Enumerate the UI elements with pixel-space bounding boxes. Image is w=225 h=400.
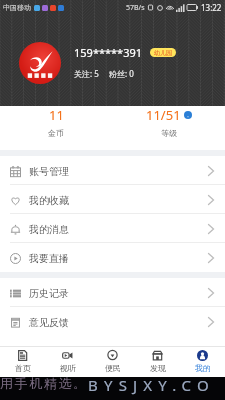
button[interactable]: 意见反馈: [0, 307, 225, 336]
staticText: 11: [49, 106, 64, 124]
button[interactable]: 我要直播: [0, 243, 225, 272]
staticText: 意见反馈: [29, 316, 69, 329]
staticText: 幼儿园: [154, 49, 172, 57]
staticText: 我的收藏: [29, 194, 69, 207]
staticText: 我的: [195, 363, 211, 373]
staticText: 11/51: [146, 106, 181, 124]
staticText: 57B/s: [126, 3, 145, 13]
staticText: 视听: [60, 363, 76, 373]
staticText: 金币: [48, 128, 64, 138]
staticText: 我的消息: [29, 223, 69, 236]
button[interactable]: 11: [0, 106, 112, 138]
button[interactable]: 账号管理: [0, 156, 225, 185]
staticText: 历史记录: [29, 287, 69, 300]
button[interactable]: 首页: [0, 346, 45, 377]
staticText: 关注: 5: [74, 68, 99, 79]
button[interactable]: 便民: [90, 346, 135, 377]
staticText: 粉丝: 0: [109, 68, 134, 79]
button[interactable]: 发现: [135, 346, 180, 377]
button[interactable]: 视听: [45, 346, 90, 377]
button[interactable]: 我的: [180, 346, 225, 377]
button[interactable]: 我的消息: [0, 214, 225, 243]
button[interactable]: 11/51: [112, 106, 225, 138]
button[interactable]: 历史记录: [0, 278, 225, 307]
staticText: 账号管理: [29, 165, 69, 178]
button[interactable]: 我的收藏: [0, 185, 225, 214]
staticText: 我要直播: [29, 252, 69, 265]
staticText: 首页: [15, 363, 31, 373]
staticText: 13:22: [201, 2, 222, 13]
staticText: 用手机精选。: [0, 375, 88, 391]
staticText: 便民: [105, 363, 121, 373]
staticText: 中国移动: [3, 3, 31, 12]
staticText: 等级: [161, 128, 177, 138]
staticText: 159*****391: [74, 45, 143, 60]
staticText: BYSJXY.CO: [88, 375, 215, 395]
staticText: 发现: [150, 363, 166, 373]
